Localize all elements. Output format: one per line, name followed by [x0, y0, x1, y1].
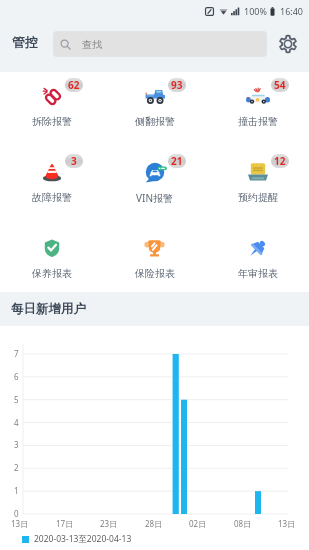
- staticText: 3: [71, 154, 77, 168]
- button[interactable]: 54: [206, 72, 309, 94]
- staticText: 21: [171, 154, 183, 168]
- staticText: 故障报警: [32, 191, 72, 204]
- button[interactable]: 93: [103, 72, 206, 92]
- staticText: 侧翻报警: [135, 115, 175, 128]
- staticText: VIN报警: [136, 191, 173, 205]
- staticText: 5: [14, 394, 19, 405]
- staticText: 13日: [11, 518, 29, 529]
- staticText: 28日: [145, 518, 163, 529]
- staticText: 17日: [56, 518, 74, 529]
- staticText: 年审报表: [238, 267, 278, 280]
- staticText: 3: [14, 439, 19, 450]
- button[interactable]: 62: [0, 72, 103, 92]
- staticText: 02日: [189, 518, 207, 529]
- staticText: 2020-03-13至2020-04-13: [34, 533, 132, 545]
- button[interactable]: 3: [0, 148, 103, 169]
- staticText: 16:40: [280, 5, 304, 17]
- button[interactable]: Settings: [273, 29, 303, 59]
- staticText: 每日新增用户: [11, 301, 86, 317]
- button[interactable]: 21: [103, 148, 206, 169]
- staticText: 1: [14, 485, 19, 496]
- staticText: 拆除报警: [32, 115, 72, 128]
- button[interactable]: 保险报表: [103, 224, 206, 243]
- staticText: 100%: [244, 5, 267, 17]
- staticText: 13日: [278, 518, 296, 529]
- staticText: 93: [171, 78, 183, 92]
- staticText: 54: [274, 78, 286, 92]
- button[interactable]: 保养报表: [0, 224, 103, 244]
- staticText: 保养报表: [32, 267, 72, 280]
- staticText: 23日: [100, 518, 118, 529]
- staticText: 0: [14, 508, 19, 519]
- staticText: 预约提醒: [238, 191, 278, 204]
- button[interactable]: 年审报表: [206, 224, 309, 245]
- staticText: 撞击报警: [238, 115, 278, 128]
- staticText: 12: [274, 154, 286, 168]
- staticText: 08日: [234, 518, 252, 529]
- staticText: 管控: [12, 34, 38, 50]
- button[interactable]: 查找: [53, 31, 267, 57]
- staticText: 2: [14, 462, 19, 473]
- staticText: 7: [14, 348, 19, 359]
- staticText: 4: [14, 417, 19, 428]
- staticText: 6: [14, 371, 19, 382]
- button[interactable]: 12: [206, 148, 309, 168]
- staticText: 查找: [82, 38, 102, 51]
- staticText: 保险报表: [135, 267, 175, 280]
- staticText: 62: [68, 78, 80, 92]
